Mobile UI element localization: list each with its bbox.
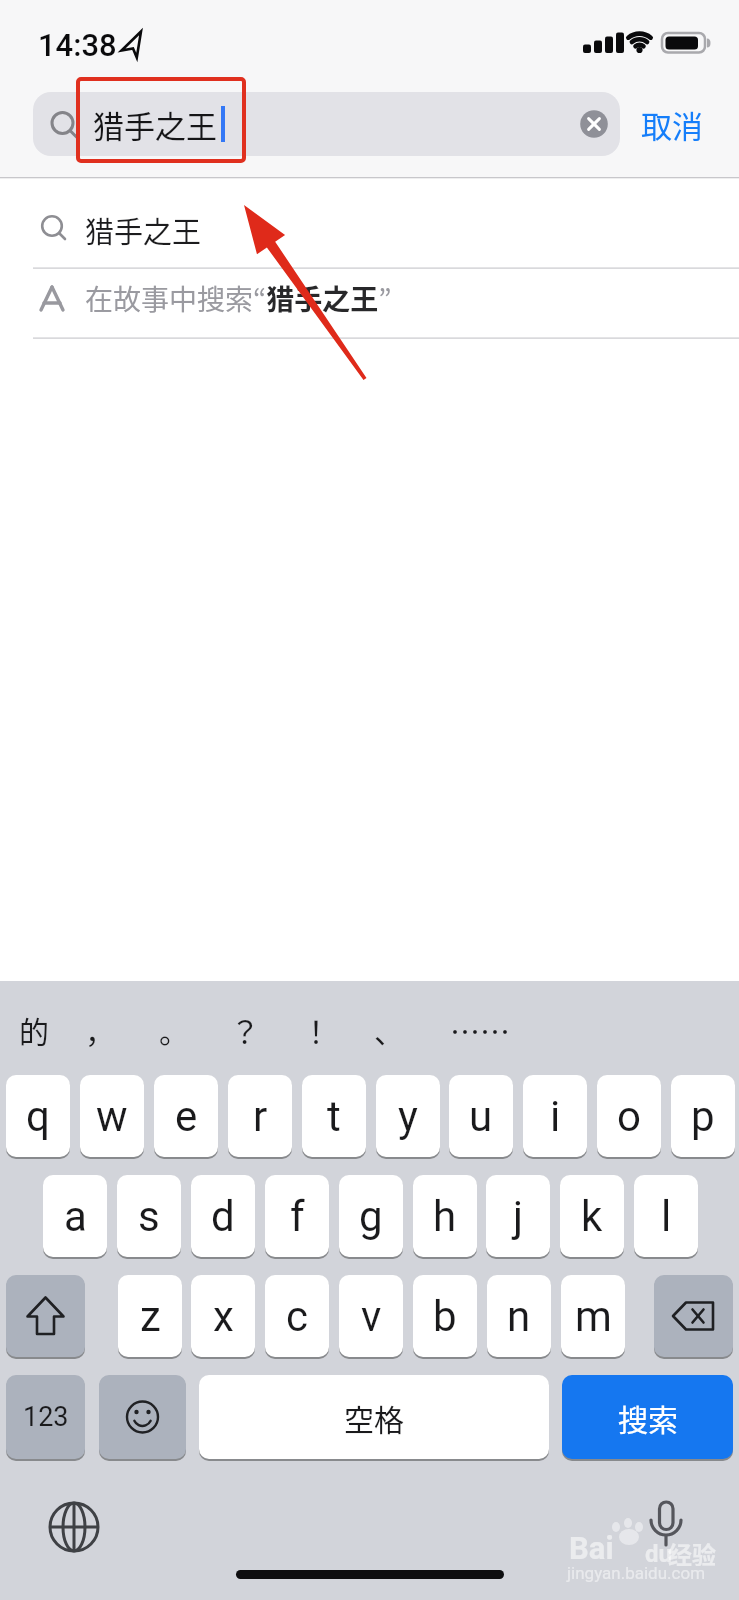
staticText: d [211, 1192, 235, 1241]
staticText: v [361, 1292, 382, 1341]
staticText: 14:38 [38, 27, 117, 63]
staticText: t [327, 1092, 341, 1141]
staticText: j [513, 1192, 524, 1241]
staticText: 123 [23, 1401, 69, 1433]
button[interactable]: c [265, 1275, 329, 1357]
staticText: e [175, 1092, 198, 1141]
staticText: s [138, 1192, 160, 1241]
staticText: l [661, 1192, 672, 1241]
staticText: 空格 [344, 1396, 404, 1439]
button[interactable]: ， [60, 1000, 140, 1058]
staticText: c [286, 1292, 308, 1341]
button[interactable]: m [561, 1275, 625, 1357]
button[interactable]: w [80, 1075, 144, 1157]
staticText: p [691, 1092, 715, 1141]
button[interactable]: l [634, 1175, 698, 1257]
button[interactable]: k [560, 1175, 624, 1257]
staticText: 猎手之王 [93, 102, 217, 147]
staticText: n [507, 1292, 531, 1341]
button[interactable]: e [154, 1075, 218, 1157]
button[interactable]: 空格 [199, 1375, 549, 1459]
button[interactable]: i [523, 1075, 587, 1157]
button[interactable]: 取消 [641, 92, 735, 156]
button[interactable]: y [376, 1075, 440, 1157]
button[interactable]: s [117, 1175, 181, 1257]
button[interactable]: r [228, 1075, 292, 1157]
staticText: 、 [374, 1008, 404, 1051]
button[interactable]: …… [440, 1000, 520, 1058]
staticText: Bai [569, 1530, 614, 1564]
button[interactable]: x [191, 1275, 255, 1357]
staticText: jingyan.baidu.com [567, 1563, 706, 1583]
button[interactable]: ？ [205, 1000, 285, 1058]
staticText: du [645, 1540, 672, 1568]
button[interactable]: b [413, 1275, 477, 1357]
button[interactable]: h [413, 1175, 477, 1257]
button[interactable]: j [486, 1175, 550, 1257]
staticText: a [64, 1192, 87, 1241]
staticText: h [433, 1192, 457, 1241]
staticText: 经验 [668, 1536, 716, 1566]
button[interactable]: n [487, 1275, 551, 1357]
staticText: z [140, 1292, 161, 1341]
button[interactable]: p [671, 1075, 735, 1157]
button[interactable]: 的 [0, 1000, 74, 1058]
button[interactable] [0, 268, 739, 338]
button[interactable]: g [339, 1175, 403, 1257]
staticText: w [96, 1092, 128, 1141]
staticText: 在故事中搜索“猎手之王” [85, 278, 392, 319]
staticText: 。 [159, 1008, 189, 1051]
button[interactable]: 。 [134, 1000, 214, 1058]
button[interactable] [6, 1275, 85, 1357]
staticText: f [290, 1192, 305, 1241]
staticText: 搜索 [618, 1396, 678, 1439]
button[interactable]: a [43, 1175, 107, 1257]
button[interactable]: q [6, 1075, 70, 1157]
staticText: ！ [301, 1008, 331, 1051]
staticText: ， [85, 1008, 115, 1051]
staticText: k [581, 1192, 603, 1241]
staticText: o [617, 1092, 641, 1141]
staticText: 的 [19, 1008, 49, 1051]
button[interactable]: t [302, 1075, 366, 1157]
button[interactable]: u [449, 1075, 513, 1157]
button[interactable]: z [118, 1275, 182, 1357]
button[interactable]: ！ [276, 1000, 356, 1058]
button[interactable]: 123 [6, 1375, 85, 1459]
button[interactable] [33, 92, 620, 156]
staticText: b [433, 1292, 457, 1341]
button[interactable] [99, 1375, 186, 1459]
button[interactable]: d [191, 1175, 255, 1257]
staticText: ？ [230, 1008, 260, 1051]
staticText: u [469, 1092, 493, 1141]
button[interactable]: v [339, 1275, 403, 1357]
button[interactable]: 、 [349, 1000, 429, 1058]
staticText: g [359, 1192, 383, 1241]
button[interactable]: f [265, 1175, 329, 1257]
staticText: x [213, 1292, 234, 1341]
button[interactable] [640, 1496, 692, 1552]
staticText: 猎手之王 [85, 209, 202, 251]
staticText: r [253, 1092, 268, 1141]
staticText: …… [450, 1008, 510, 1051]
button[interactable] [45, 1498, 105, 1558]
staticText: y [398, 1092, 418, 1141]
button[interactable] [0, 178, 739, 268]
button[interactable]: 搜索 [562, 1375, 733, 1459]
staticText: 取消 [641, 102, 703, 147]
staticText: m [575, 1292, 612, 1341]
button[interactable]: o [597, 1075, 661, 1157]
staticText: i [550, 1092, 561, 1141]
staticText: q [26, 1092, 50, 1141]
button[interactable] [654, 1275, 733, 1357]
